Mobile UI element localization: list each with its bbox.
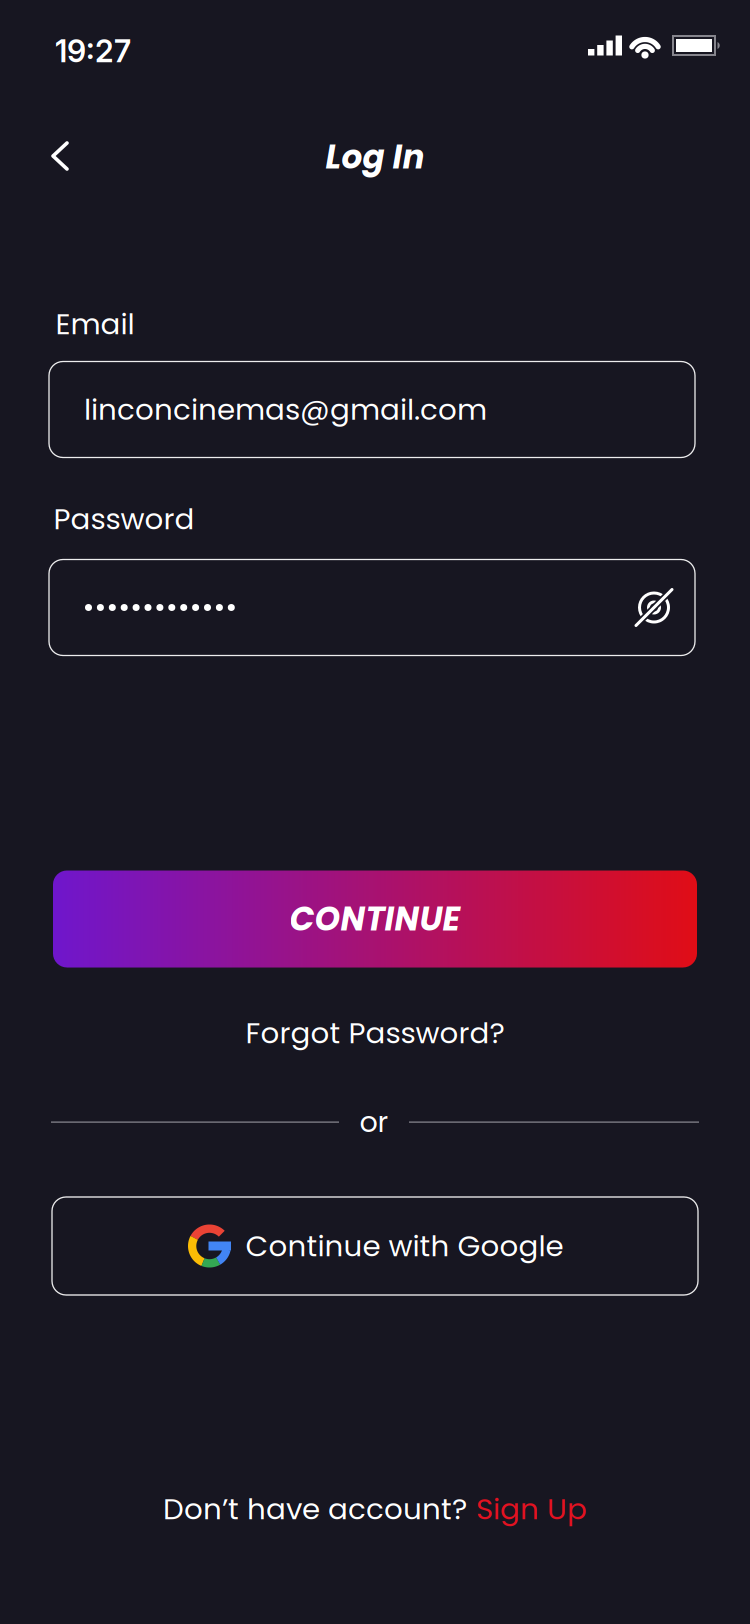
staticText: Email	[55, 303, 134, 345]
button[interactable]: Forgot Password?	[245, 1012, 504, 1054]
button[interactable]: Show password	[632, 585, 676, 629]
button[interactable]: Email	[49, 361, 695, 457]
button[interactable]: Back	[38, 134, 82, 178]
staticText: Don’t have account?	[163, 1488, 467, 1530]
staticText: Forgot Password?	[245, 1012, 504, 1054]
button[interactable]: Sign Up	[476, 1488, 587, 1530]
button[interactable]: Continue with Google	[52, 1197, 698, 1295]
staticText: or	[359, 1102, 388, 1142]
staticText: Log In	[325, 134, 424, 180]
button[interactable]: CONTINUE	[53, 870, 697, 967]
staticText: Continue with Google	[245, 1225, 563, 1267]
staticText: linconcinemas@gmail.com	[84, 389, 487, 430]
staticText: 19:27	[55, 32, 131, 69]
button[interactable]: Password	[49, 559, 695, 655]
staticText: CONTINUE	[289, 896, 460, 942]
staticText: Sign Up	[476, 1488, 587, 1530]
staticText: Password	[53, 498, 194, 540]
